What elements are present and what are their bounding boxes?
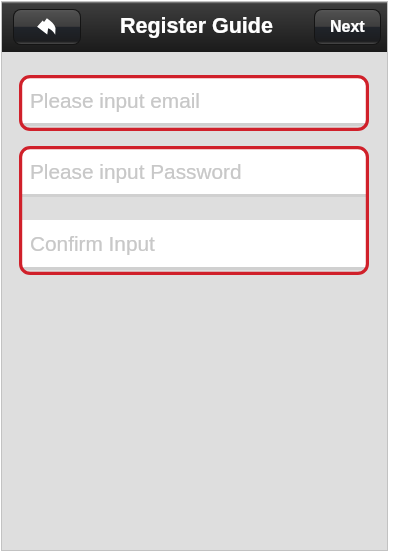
staticText: Confirm Input	[30, 232, 155, 255]
button[interactable]: Next	[315, 10, 380, 44]
staticText: Next	[330, 18, 365, 36]
staticText: Please input email	[30, 89, 200, 112]
staticText: Register Guide	[120, 14, 273, 38]
button[interactable]: Back	[14, 10, 80, 44]
staticText: Please input Password	[30, 160, 242, 183]
